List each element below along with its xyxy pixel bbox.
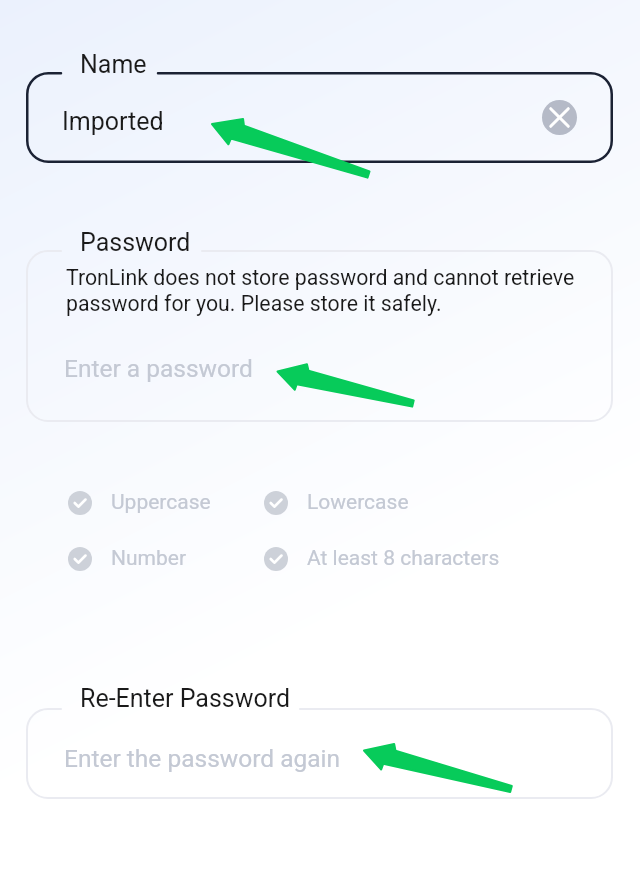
button[interactable]: Lowercase: [264, 490, 409, 515]
button[interactable]: Uppercase: [68, 490, 211, 515]
staticText: At least 8 characters: [307, 546, 500, 571]
staticText: Enter a password: [64, 354, 253, 383]
staticText: Imported: [62, 107, 164, 136]
button[interactable]: Number: [68, 546, 187, 571]
button[interactable]: Clear text: [542, 100, 577, 135]
staticText: Number: [111, 546, 187, 571]
staticText: Password: [80, 228, 191, 257]
button[interactable]: Imported: [26, 72, 613, 163]
button[interactable]: TronLink does not store password and can…: [26, 250, 613, 422]
staticText: Uppercase: [111, 490, 211, 515]
staticText: Name: [80, 50, 147, 79]
staticText: Re-Enter Password: [80, 684, 291, 713]
button[interactable]: Enter the password again: [26, 708, 613, 799]
staticText: TronLink does not store password and can…: [66, 265, 575, 316]
button[interactable]: At least 8 characters: [264, 546, 500, 571]
staticText: Lowercase: [307, 490, 409, 515]
staticText: Enter the password again: [64, 744, 341, 773]
